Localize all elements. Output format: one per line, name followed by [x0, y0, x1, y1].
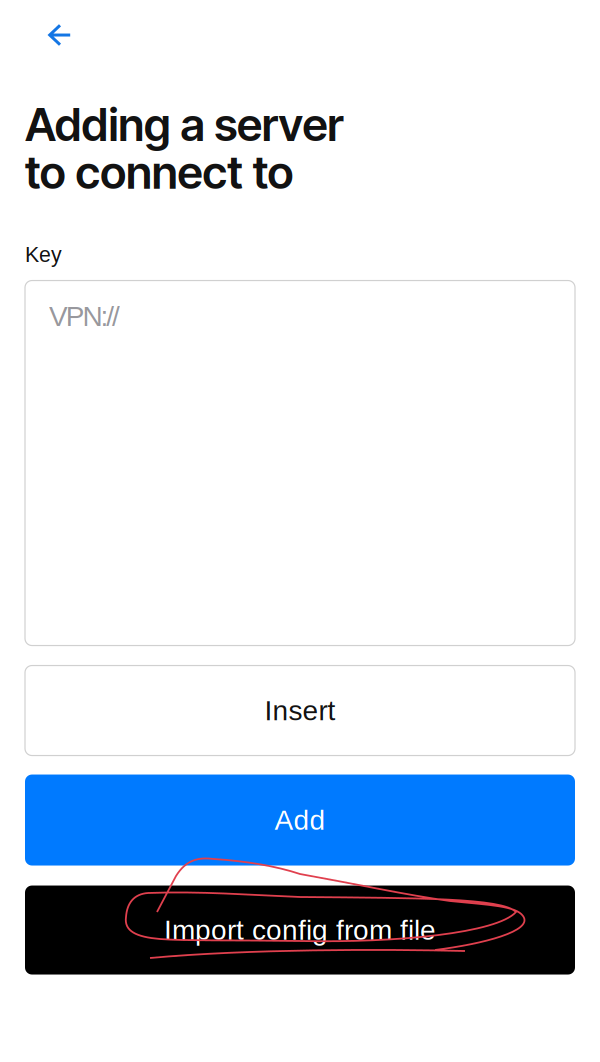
button[interactable]: Back — [25, 5, 95, 65]
staticText: VPN:// — [49, 300, 120, 332]
staticText: Import config from file — [164, 914, 436, 946]
staticText: Insert — [264, 695, 335, 726]
staticText: Add — [274, 804, 325, 836]
staticText: Adding a server to connect to — [25, 97, 343, 200]
button[interactable]: Add — [25, 774, 575, 865]
staticText: Key — [25, 243, 62, 266]
button[interactable]: Insert — [25, 665, 575, 755]
button[interactable]: Import config from file — [25, 885, 575, 974]
